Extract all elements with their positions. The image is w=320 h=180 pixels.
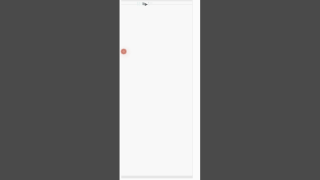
button[interactable]: Home — [119, 174, 146, 180]
button[interactable]: Content list — [119, 8, 200, 174]
button[interactable]: Status bar icons — [135, 0, 155, 8]
button[interactable]: More options — [190, 0, 200, 8]
button[interactable]: Record indicator — [116, 43, 132, 59]
button[interactable]: Search — [146, 174, 173, 180]
button[interactable]: Profile — [173, 174, 200, 180]
button[interactable]: App title — [135, 0, 155, 8]
button[interactable]: Navigation menu — [119, 0, 135, 8]
